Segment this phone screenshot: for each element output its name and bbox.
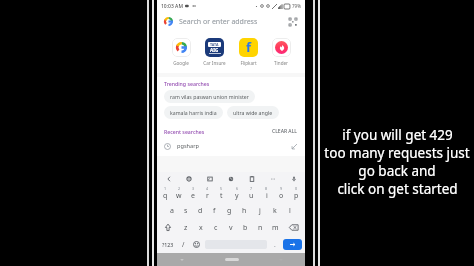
button[interactable]: m	[268, 219, 283, 236]
staticText: p	[294, 191, 299, 201]
button[interactable]: Themes	[225, 173, 236, 184]
button[interactable]: v	[223, 219, 238, 236]
button[interactable]: s	[179, 202, 193, 219]
staticText: b	[243, 223, 248, 233]
button[interactable]: g	[222, 202, 237, 219]
staticText: 6	[236, 186, 239, 191]
button[interactable]: Voice input	[288, 173, 299, 184]
button[interactable]: GIF	[204, 173, 215, 184]
button[interactable]: Search or enter address	[157, 12, 305, 31]
button[interactable]: TATA	[198, 36, 230, 68]
button[interactable]: 4	[200, 185, 214, 202]
button[interactable]: Search	[283, 239, 302, 250]
staticText: n	[258, 223, 263, 233]
staticText: o	[279, 191, 284, 201]
button[interactable]: Tinder	[265, 36, 297, 68]
staticText: a	[170, 206, 174, 216]
button[interactable]: Emoji	[190, 237, 203, 252]
staticText: k	[273, 206, 277, 216]
staticText: z	[184, 223, 188, 233]
button[interactable]: CLEAR ALL	[271, 127, 298, 136]
staticText: t	[220, 191, 223, 201]
button[interactable]: .	[269, 237, 281, 252]
staticText: 10:03 AM	[161, 3, 183, 10]
button[interactable]: z	[178, 219, 193, 236]
staticText: c	[214, 223, 218, 233]
button[interactable]: a	[165, 202, 179, 219]
staticText: y	[235, 191, 239, 201]
button[interactable]: c	[208, 219, 223, 236]
staticText: ultra wide angle	[233, 109, 273, 116]
staticText: 4	[206, 186, 209, 191]
staticText: Tinder	[274, 60, 288, 66]
staticText: Google	[173, 60, 189, 66]
button[interactable]: More options	[267, 173, 278, 184]
button[interactable]: 6	[229, 185, 244, 202]
button[interactable]: ram vilas paswan union minister	[164, 90, 255, 103]
staticText: too many requests just	[324, 144, 470, 162]
staticText: r	[206, 191, 209, 201]
staticText: 79%	[292, 3, 301, 9]
button[interactable]: Scan QR code	[287, 16, 298, 27]
staticText: 8	[265, 186, 268, 191]
staticText: d	[198, 206, 203, 216]
button[interactable]: 2	[172, 185, 186, 202]
button[interactable]: 1	[158, 185, 172, 202]
button[interactable]: kamala harris india	[164, 106, 223, 119]
button[interactable]: 8	[259, 185, 274, 202]
button[interactable]: n	[253, 219, 268, 236]
staticText: s	[184, 206, 188, 216]
button[interactable]: b	[238, 219, 253, 236]
staticText: i	[266, 191, 268, 201]
button[interactable]: Backspace	[283, 219, 304, 236]
button[interactable]: ?123	[158, 237, 177, 252]
button[interactable]: j	[252, 202, 267, 219]
button[interactable]: 0	[289, 185, 304, 202]
button[interactable]: Shift	[158, 219, 178, 236]
staticText: 1	[164, 186, 167, 191]
button[interactable]: Google	[165, 36, 197, 68]
staticText: m	[272, 223, 279, 233]
button[interactable]: f	[232, 36, 264, 68]
button[interactable]: x	[193, 219, 208, 236]
button[interactable]: Clipboard	[246, 173, 257, 184]
staticText: h	[242, 206, 247, 216]
button[interactable]: d	[193, 202, 207, 219]
button[interactable]: pgsharp	[164, 140, 298, 152]
staticText: Recent searches	[164, 128, 205, 135]
staticText: kamala harris india	[170, 109, 217, 116]
staticText: 5	[220, 186, 223, 191]
staticText: g	[227, 206, 232, 216]
button[interactable]: 9	[274, 185, 289, 202]
staticText: if you will get 429	[342, 126, 453, 144]
staticText: 9	[280, 186, 283, 191]
staticText: x	[199, 223, 203, 233]
button[interactable]: f	[207, 202, 222, 219]
button[interactable]: 7	[244, 185, 259, 202]
staticText: Flipkart	[240, 60, 257, 66]
staticText: e	[191, 191, 195, 201]
staticText: ram vilas paswan union minister	[170, 93, 249, 100]
button[interactable]: Settings	[183, 173, 194, 184]
staticText: Car Insure	[203, 60, 226, 66]
staticText: .	[274, 240, 276, 249]
staticText: CLEAR ALL	[272, 128, 297, 135]
staticText: v	[229, 223, 233, 233]
staticText: Trending searches	[164, 80, 210, 87]
button[interactable]: 5	[214, 185, 229, 202]
button[interactable]: k	[267, 202, 282, 219]
button[interactable]: Home	[207, 253, 256, 266]
button[interactable]: /	[177, 237, 190, 252]
staticText: j	[259, 206, 261, 216]
button[interactable]: l	[282, 202, 297, 219]
button[interactable]: ultra wide angle	[227, 106, 279, 119]
staticText: u	[249, 191, 254, 201]
staticText: 7	[250, 186, 253, 191]
staticText: /	[182, 240, 185, 249]
button[interactable]: 3	[186, 185, 200, 202]
button[interactable]: Back	[163, 173, 174, 184]
button[interactable]: h	[237, 202, 252, 219]
